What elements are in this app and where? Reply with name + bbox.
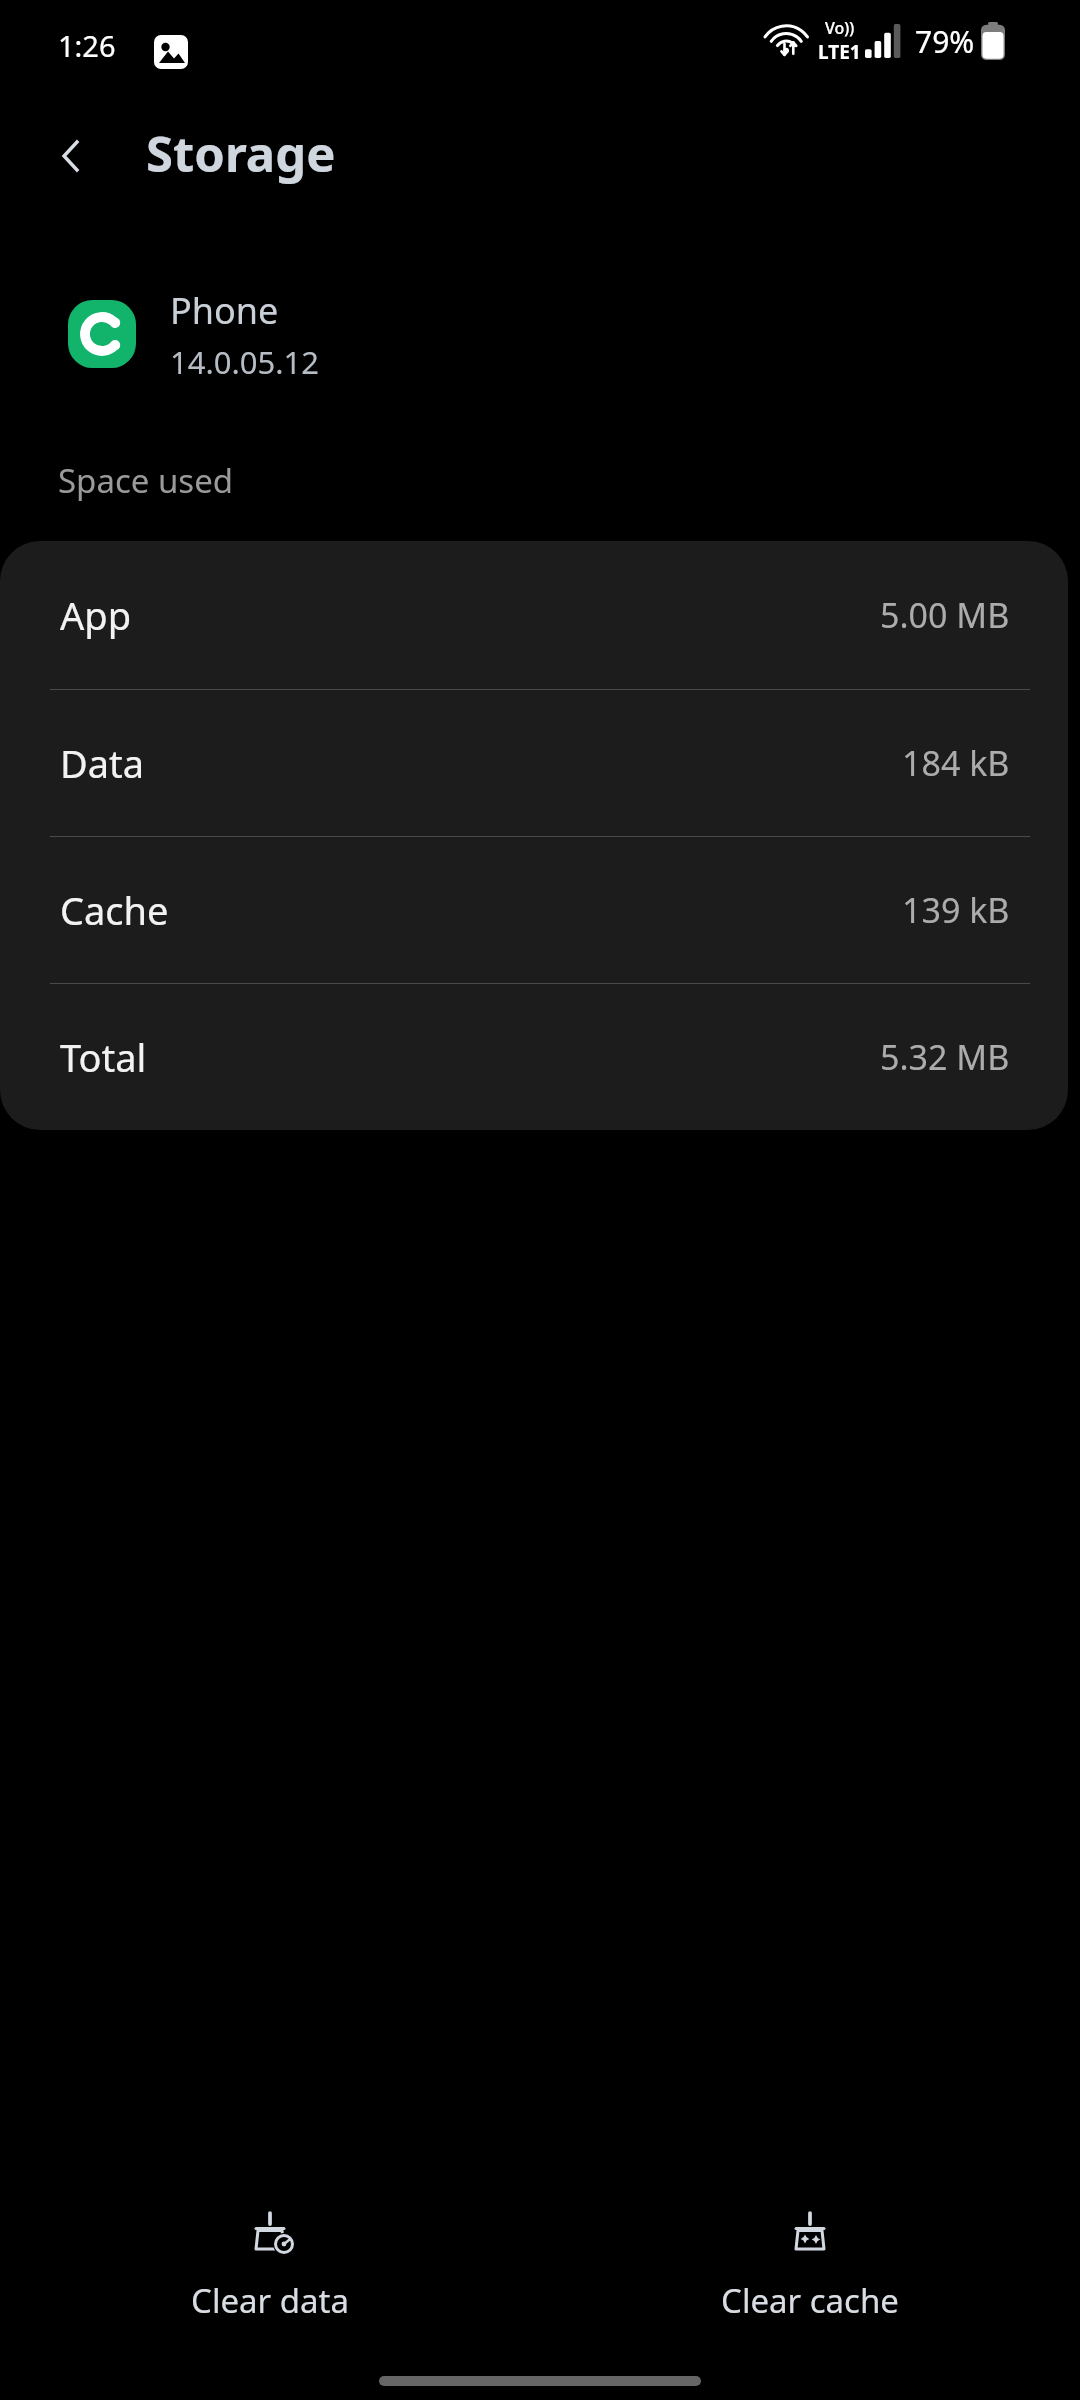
button[interactable]: Cache (0, 837, 1068, 983)
staticText: Vo)) (825, 17, 855, 39)
button[interactable]: Clear cache (540, 2184, 1080, 2364)
staticText: Total (60, 1031, 147, 1083)
button[interactable]: Data (0, 690, 1068, 836)
staticText: 184 kB (902, 740, 1010, 786)
staticText: Data (60, 737, 145, 789)
staticText: 1:26 (58, 26, 116, 65)
button[interactable]: Back (34, 118, 110, 194)
button[interactable]: App (0, 541, 1068, 689)
staticText: LTE1 (818, 39, 861, 65)
staticText: 5.00 MB (880, 592, 1010, 638)
staticText: 139 kB (902, 887, 1010, 933)
staticText: 14.0.05.12 (170, 341, 320, 383)
staticText: Storage (146, 120, 336, 187)
button[interactable]: Total (0, 984, 1068, 1130)
staticText: Space used (58, 458, 234, 503)
staticText: Clear data (191, 2278, 349, 2323)
staticText: Cache (60, 884, 169, 936)
staticText: 5.32 MB (880, 1034, 1010, 1080)
button[interactable]: Clear data (0, 2184, 540, 2364)
staticText: 79% (915, 21, 975, 62)
staticText: Phone (170, 286, 279, 335)
staticText: Clear cache (721, 2278, 899, 2323)
staticText: App (60, 589, 132, 641)
